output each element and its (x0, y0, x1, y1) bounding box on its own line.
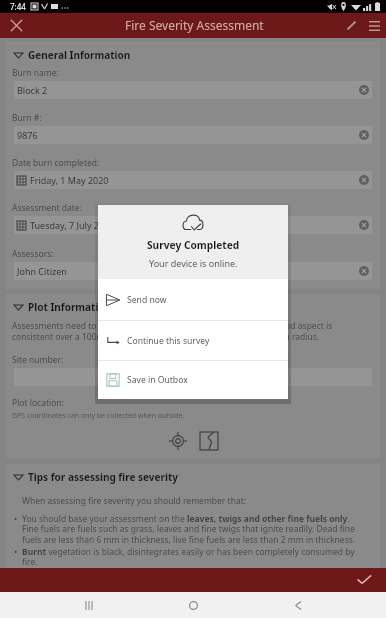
staticText: • (14, 546, 18, 558)
staticText: Burn name: (12, 67, 59, 79)
staticText: Tips for assessing fire severity (28, 470, 179, 484)
button[interactable]: Send now (98, 279, 288, 320)
button[interactable]: John Citizen (14, 262, 372, 280)
staticText: Date burn completed: (12, 157, 100, 169)
button[interactable]: Home (177, 592, 209, 618)
button[interactable]: Save (0, 568, 386, 592)
button[interactable]: Save in Outbox (98, 361, 288, 399)
staticText: 7:44 (10, 1, 26, 12)
staticText: Burnt vegetation is black, disintegrates… (22, 546, 365, 568)
button[interactable]: Clear (356, 127, 372, 143)
staticText: Send now (127, 294, 167, 306)
button[interactable]: Block 2 (14, 81, 372, 99)
staticText: Plot Information (28, 300, 112, 314)
staticText: John Citizen (17, 265, 67, 277)
button[interactable]: Clear (356, 263, 372, 279)
staticText: Plot location: (12, 397, 64, 409)
button[interactable]: Continue this survey (98, 321, 288, 360)
staticText: General Information (28, 48, 131, 62)
staticText: Fire Severity Assessment (125, 17, 264, 33)
staticText: Assessment date: (12, 202, 82, 214)
button[interactable]: 9876 (14, 126, 372, 144)
staticText: Burn #: (12, 112, 42, 124)
staticText: 9876 (17, 129, 38, 141)
button[interactable]: Attachment (339, 13, 363, 38)
button[interactable] (14, 368, 372, 386)
staticText: You should base your assessment on the l… (22, 513, 365, 546)
staticText: GPS coordinates can only be collected wh… (12, 411, 185, 421)
staticText: Tuesday, 7 July 2020 (30, 219, 115, 231)
staticText: Save in Outbox (127, 374, 188, 386)
button[interactable]: Open map (199, 431, 218, 450)
staticText: When assessing fire severity you should … (22, 495, 247, 507)
staticText: • (14, 513, 18, 525)
button[interactable]: Menu (362, 13, 386, 38)
button[interactable]: Tuesday, 7 July 2020 (14, 216, 372, 234)
staticText: Your device is online. (149, 257, 238, 269)
button[interactable]: Recent apps (73, 592, 105, 618)
button[interactable]: Close (4, 13, 28, 38)
staticText: Friday, 1 May 2020 (30, 174, 109, 186)
staticText: Assessments need to be made in an open l… (12, 320, 368, 342)
button[interactable]: Back (282, 592, 314, 618)
button[interactable]: Clear (356, 217, 372, 233)
staticText: Block 2 (17, 84, 48, 96)
button[interactable]: Clear (356, 172, 372, 188)
staticText: Continue this survey (127, 335, 210, 347)
button[interactable]: Get GPS location (168, 431, 187, 450)
button[interactable]: Friday, 1 May 2020 (14, 171, 372, 189)
staticText: Site number: (12, 354, 64, 366)
staticText: Survey Completed (147, 238, 240, 252)
staticText: Assessors: (12, 248, 54, 260)
button[interactable]: Clear (356, 82, 372, 98)
